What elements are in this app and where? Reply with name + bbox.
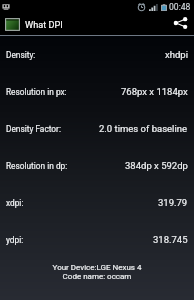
staticText: Resolution in dp: <box>6 161 68 171</box>
staticText: 318.745 <box>153 234 188 245</box>
staticText: Density: <box>6 50 36 60</box>
button[interactable]: Share <box>169 13 191 35</box>
staticText: 00:48 <box>169 2 191 12</box>
staticText: 384dp x 592dp <box>125 160 188 171</box>
button[interactable]: Density: <box>0 36 194 73</box>
staticText: Resolution in px: <box>6 87 67 97</box>
staticText: 2.0 times of baseline <box>99 123 188 134</box>
staticText: What DPI <box>25 19 63 30</box>
button[interactable]: xdpi: <box>0 184 194 221</box>
staticText: Density Factor: <box>6 124 61 134</box>
button[interactable]: Resolution in dp: <box>0 147 194 184</box>
staticText: ydpi: <box>6 235 24 245</box>
button[interactable]: Density Factor: <box>0 110 194 147</box>
staticText: Your Device:LGE Nexus 4 Code name: occam <box>0 263 194 281</box>
staticText: 319.79 <box>158 197 188 208</box>
staticText: xdpi: <box>6 198 24 208</box>
button[interactable]: ydpi: <box>0 221 194 258</box>
staticText: 768px x 1184px <box>121 86 188 97</box>
button[interactable]: Resolution in px: <box>0 73 194 110</box>
staticText: xhdpi <box>165 49 188 60</box>
